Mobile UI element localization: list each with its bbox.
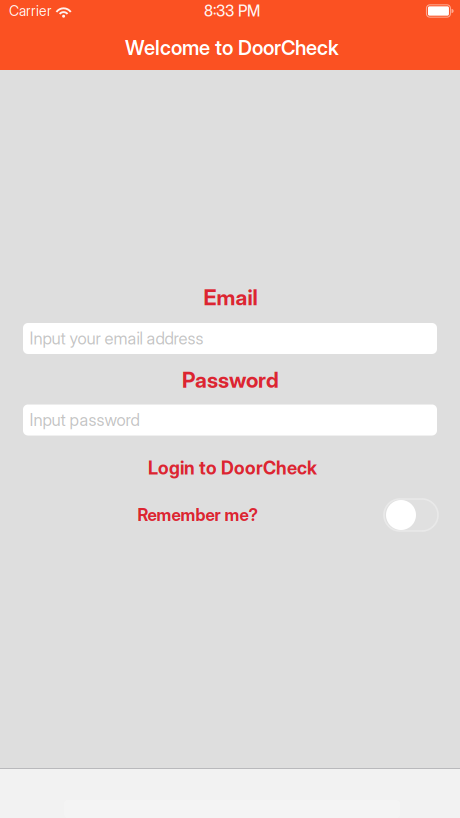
staticText: Carrier <box>9 2 52 19</box>
button[interactable]: Login to DoorCheck <box>25 453 439 483</box>
staticText: Password <box>182 367 279 393</box>
staticText: Email <box>203 285 257 310</box>
staticText: Input your email address <box>29 328 203 349</box>
staticText: Welcome to DoorCheck <box>125 35 339 60</box>
button[interactable]: Remember me <box>384 499 438 531</box>
staticText: 8:33 PM <box>204 2 260 20</box>
button[interactable]: Remember me? <box>137 505 257 525</box>
staticText: Remember me? <box>137 505 257 525</box>
staticText: Input password <box>29 410 139 430</box>
button[interactable]: Email address <box>23 323 437 354</box>
button[interactable]: Password <box>23 404 437 435</box>
staticText: Login to DoorCheck <box>148 457 317 479</box>
